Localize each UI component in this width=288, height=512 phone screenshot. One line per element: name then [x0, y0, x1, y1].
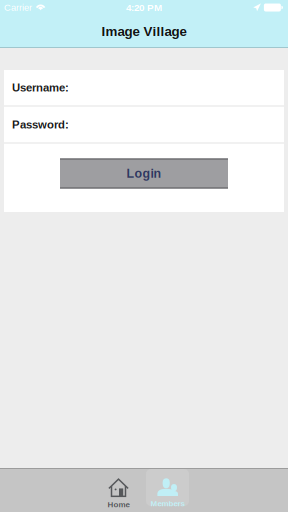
- staticText: Password:: [12, 118, 69, 131]
- staticText: Members: [150, 499, 184, 508]
- staticText: Username:: [12, 81, 69, 94]
- staticText: 4:20 PM: [126, 2, 162, 13]
- staticText: Login: [126, 167, 161, 180]
- button[interactable]: Login: [60, 158, 228, 188]
- button[interactable]: Members: [143, 469, 192, 512]
- staticText: Image Village: [101, 24, 186, 39]
- staticText: Carrier: [4, 2, 32, 13]
- staticText: Home: [107, 500, 129, 509]
- button[interactable]: Home: [94, 469, 143, 512]
